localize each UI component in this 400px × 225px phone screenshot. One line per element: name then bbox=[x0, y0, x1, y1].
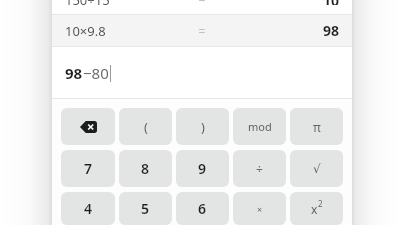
staticText: ÷ bbox=[256, 161, 263, 177]
button[interactable]: 150÷15 bbox=[52, 0, 352, 14]
staticText: √ bbox=[313, 162, 321, 176]
staticText: 5 bbox=[141, 199, 150, 218]
button[interactable]: 9 bbox=[176, 150, 229, 187]
staticText: 6 bbox=[198, 199, 207, 218]
button[interactable]: 7 bbox=[61, 150, 115, 187]
button[interactable]: 6 bbox=[176, 192, 229, 225]
button[interactable]: ) bbox=[176, 108, 229, 145]
staticText: 98 bbox=[52, 21, 339, 40]
button[interactable]: ( bbox=[119, 108, 172, 145]
button[interactable]: 4 bbox=[61, 192, 115, 225]
button[interactable]: 98 bbox=[52, 47, 352, 98]
button[interactable]: 8 bbox=[119, 150, 172, 187]
staticText: = bbox=[52, 23, 352, 39]
staticText: 2 bbox=[318, 198, 323, 209]
button[interactable]: mod bbox=[233, 108, 286, 145]
staticText: mod bbox=[248, 119, 272, 134]
staticText: ( bbox=[144, 118, 148, 136]
button[interactable]: x bbox=[290, 192, 343, 225]
staticText: π bbox=[313, 119, 321, 135]
button[interactable]: 10×9.8 bbox=[52, 15, 352, 46]
button[interactable]: √ bbox=[290, 150, 343, 187]
button[interactable]: π bbox=[290, 108, 343, 145]
staticText: 8 bbox=[141, 159, 150, 178]
staticText: 7 bbox=[84, 159, 93, 178]
staticText: × bbox=[257, 203, 263, 215]
staticText: x bbox=[311, 201, 318, 217]
staticText: 10×9.8 bbox=[65, 22, 106, 40]
staticText: 4 bbox=[84, 199, 93, 218]
staticText: 10 bbox=[52, 0, 339, 5]
button[interactable]: × bbox=[233, 192, 286, 225]
button[interactable]: 5 bbox=[119, 192, 172, 225]
staticText: 150÷15 bbox=[65, 0, 110, 5]
button[interactable]: Backspace bbox=[61, 108, 115, 145]
button[interactable]: ÷ bbox=[233, 150, 286, 187]
staticText: = bbox=[52, 0, 352, 5]
staticText: 9 bbox=[198, 159, 207, 178]
staticText: 98 bbox=[65, 63, 83, 83]
staticText: −80 bbox=[83, 63, 109, 83]
staticText: ) bbox=[201, 118, 205, 136]
